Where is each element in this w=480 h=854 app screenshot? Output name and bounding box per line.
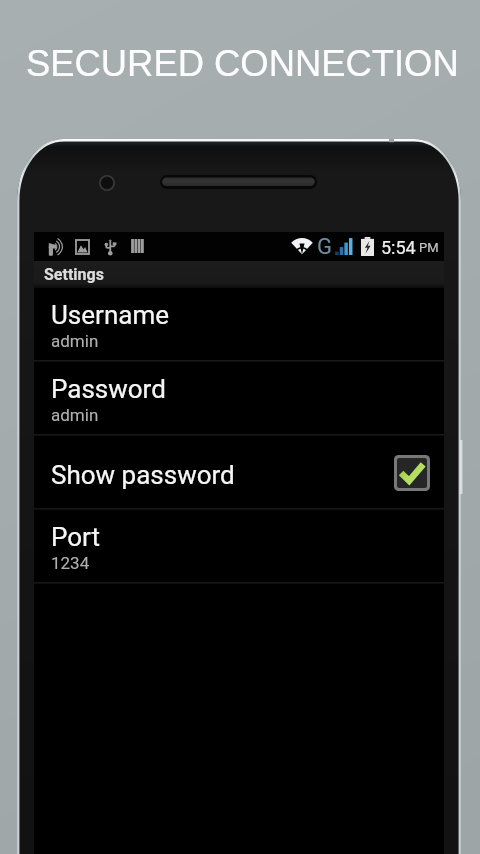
button[interactable]: Password <box>34 362 444 436</box>
staticText: 1234 <box>51 553 90 573</box>
staticText: Username <box>51 300 169 330</box>
staticText: Port <box>51 522 101 552</box>
staticText: admin <box>51 405 99 425</box>
staticText: G <box>317 234 332 260</box>
button[interactable]: Show password <box>34 436 444 510</box>
staticText: Password <box>51 374 166 404</box>
button[interactable]: Username <box>34 288 444 362</box>
staticText: SECURED CONNECTION <box>26 43 459 84</box>
other: Power button <box>460 440 463 494</box>
staticText: Show password <box>51 460 235 490</box>
staticText: 5:54 <box>381 237 416 258</box>
button[interactable]: Settings <box>34 261 444 288</box>
staticText: admin <box>51 331 99 351</box>
staticText: PM <box>419 240 439 255</box>
staticText: Settings <box>44 265 104 284</box>
button[interactable]: Port <box>34 510 444 584</box>
